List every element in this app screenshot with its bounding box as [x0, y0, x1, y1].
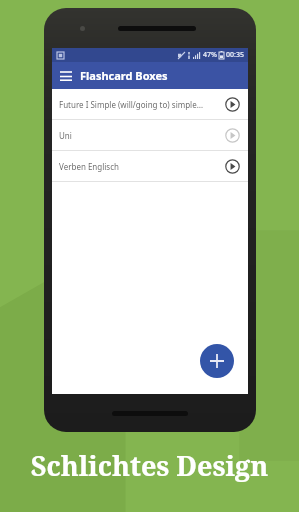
button[interactable]: Play box [224, 96, 241, 113]
staticText: Schlichtes Design [0, 447, 299, 484]
staticText: 47% [203, 50, 217, 60]
button[interactable]: Add flashcard box [200, 344, 234, 378]
staticText: Flashcard Boxes [80, 68, 168, 83]
button[interactable]: Play box [224, 127, 241, 144]
button[interactable]: Verben Englisch [52, 151, 248, 182]
staticText: Verben Englisch [59, 161, 218, 172]
staticText: Uni [59, 130, 218, 141]
button[interactable]: Open navigation drawer [57, 67, 75, 85]
button[interactable]: Play box [224, 158, 241, 175]
staticText: 00:35 [226, 50, 244, 60]
button[interactable]: Uni [52, 120, 248, 151]
staticText: Future I Simple (will/going to) simple… [59, 99, 218, 110]
button[interactable]: Future I Simple (will/going to) simple… [52, 89, 248, 120]
